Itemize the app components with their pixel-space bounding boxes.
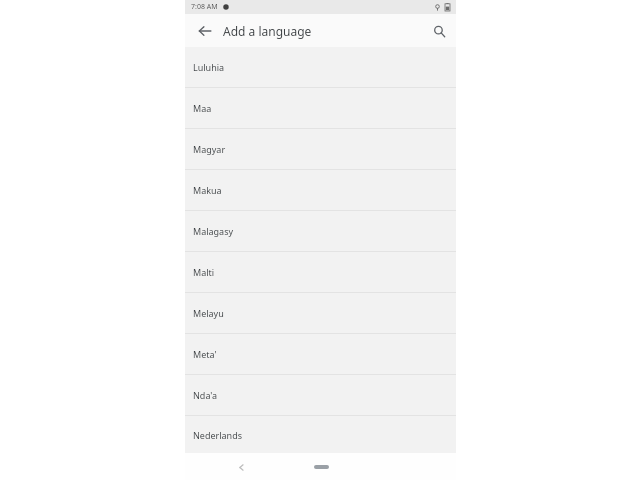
button[interactable]: Maa bbox=[185, 88, 456, 128]
button[interactable]: Search bbox=[426, 18, 452, 44]
staticText: Nederlands bbox=[193, 429, 243, 441]
button[interactable]: Makua bbox=[185, 170, 456, 210]
staticText: Malti bbox=[193, 266, 215, 278]
staticText: Meta' bbox=[193, 348, 217, 360]
button[interactable]: Home bbox=[308, 461, 334, 473]
button[interactable]: Malti bbox=[185, 252, 456, 292]
staticText: Add a language bbox=[223, 23, 312, 39]
staticText: Maa bbox=[193, 102, 212, 114]
button[interactable]: Melayu bbox=[185, 293, 456, 333]
button[interactable]: Malagasy bbox=[185, 211, 456, 251]
staticText: 7:08 AM bbox=[191, 2, 218, 12]
button[interactable]: Magyar bbox=[185, 129, 456, 169]
button[interactable]: Meta' bbox=[185, 334, 456, 374]
button[interactable]: Back bbox=[192, 18, 218, 44]
staticText: Magyar bbox=[193, 143, 226, 155]
button[interactable]: Back bbox=[233, 459, 249, 475]
staticText: Luluhia bbox=[193, 61, 225, 73]
staticText: Makua bbox=[193, 184, 222, 196]
button[interactable]: Luluhia bbox=[185, 47, 456, 87]
staticText: Nda'a bbox=[193, 389, 218, 401]
staticText: Melayu bbox=[193, 307, 224, 319]
button[interactable]: Nederlands bbox=[185, 416, 456, 453]
staticText: Malagasy bbox=[193, 225, 234, 237]
button[interactable]: Nda'a bbox=[185, 375, 456, 415]
